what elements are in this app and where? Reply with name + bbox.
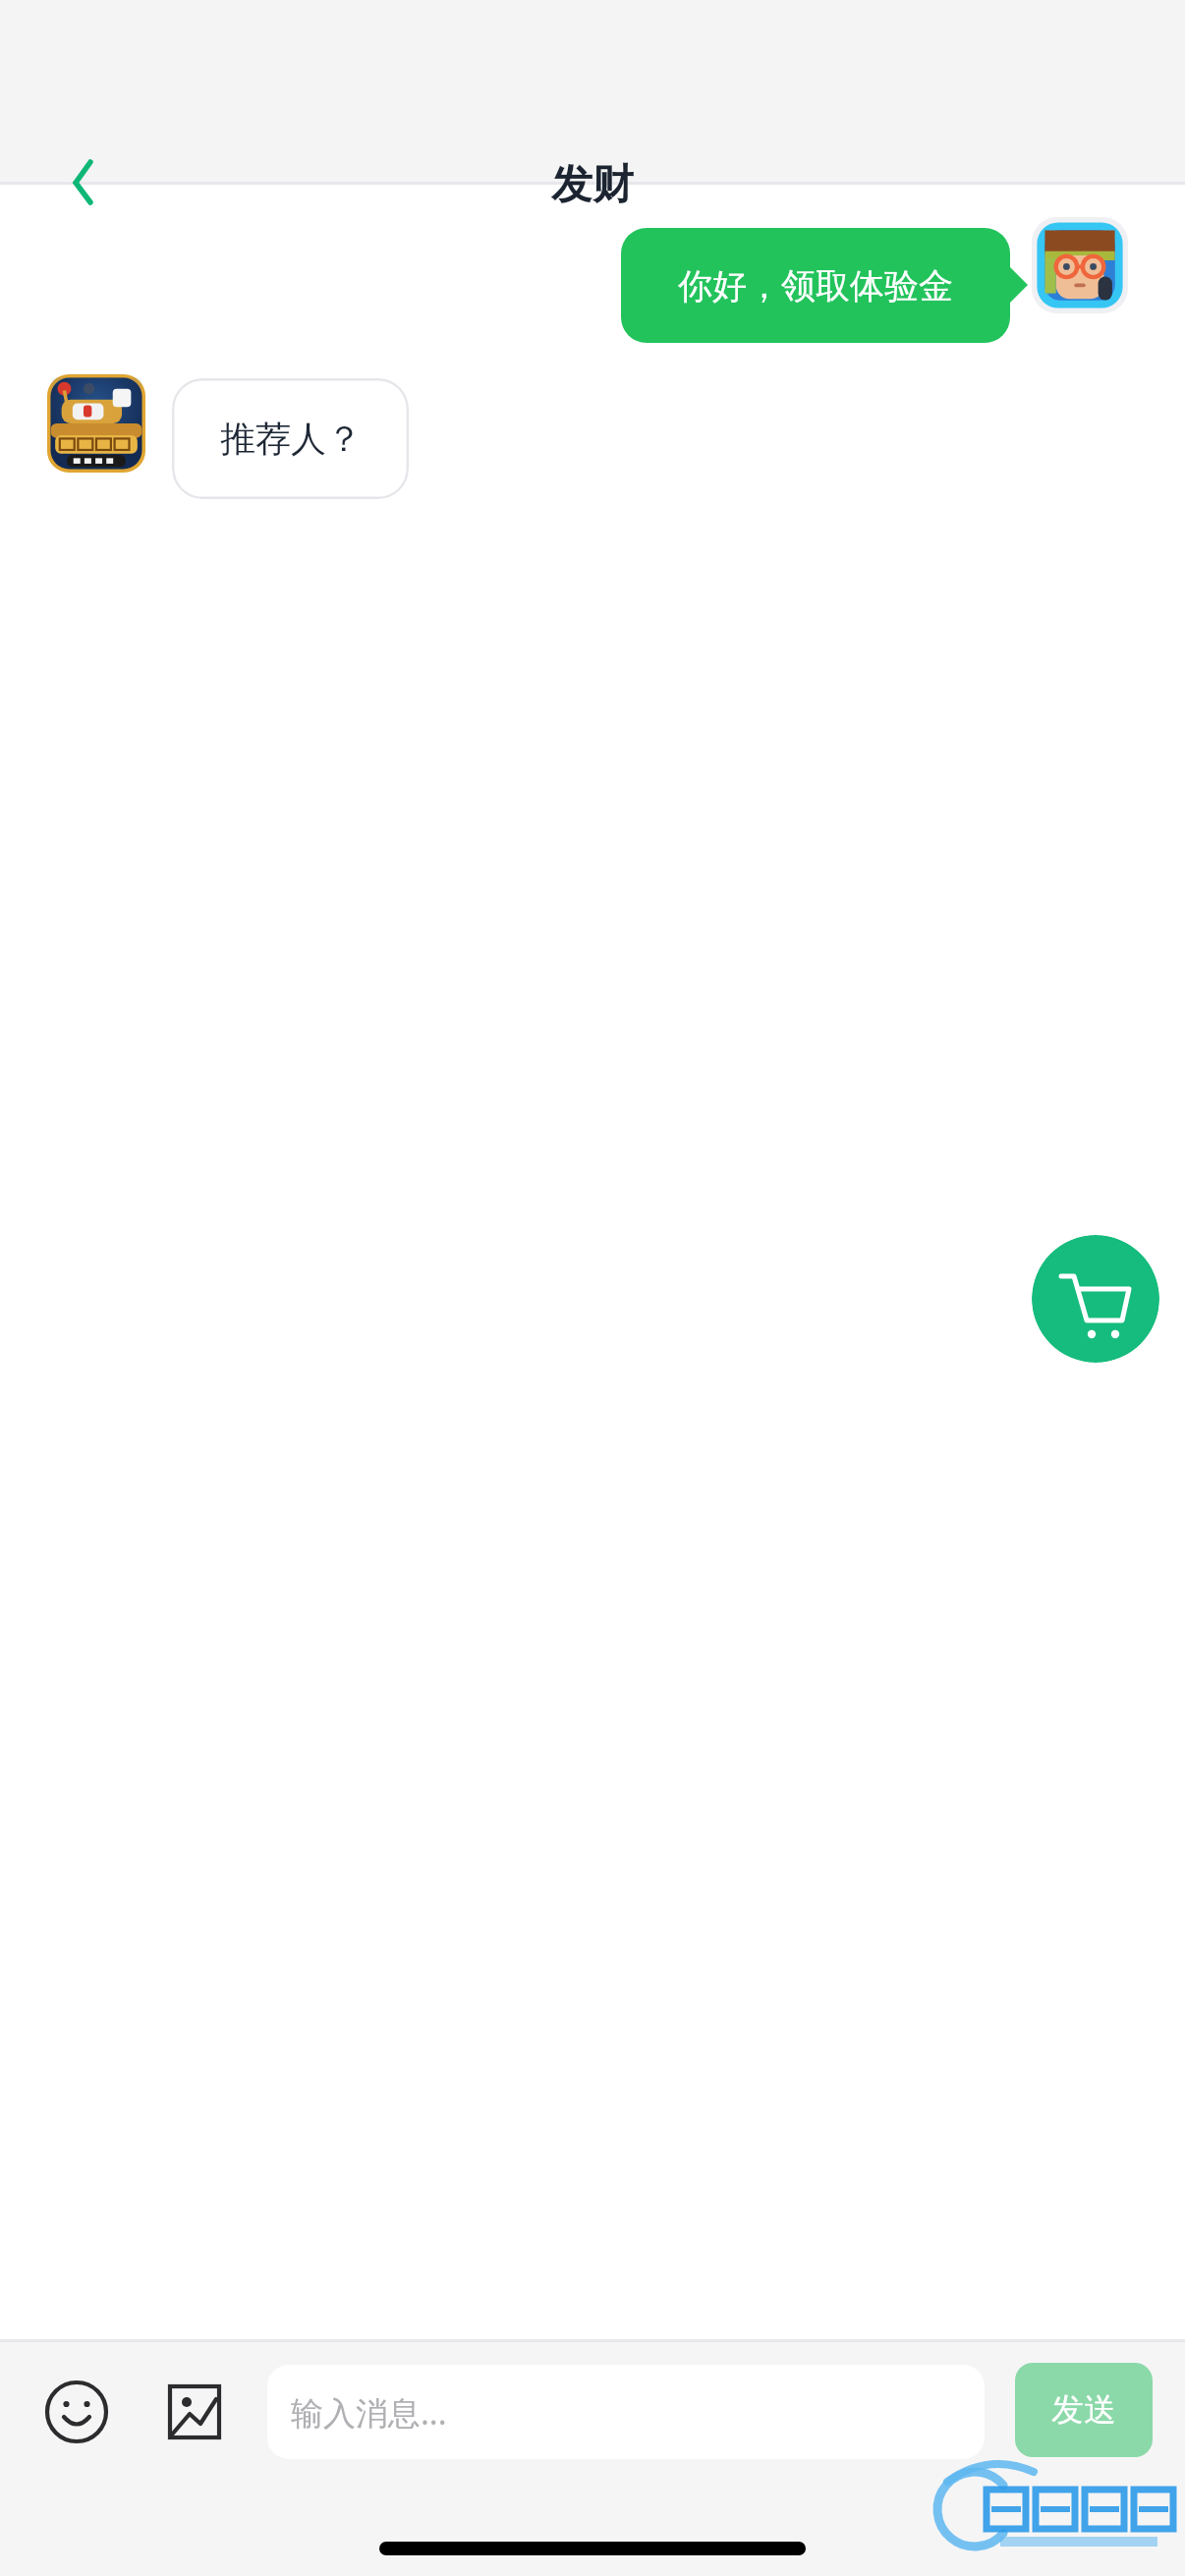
button[interactable]: Contact avatar bbox=[47, 374, 145, 473]
staticText: 发送 bbox=[1051, 2389, 1116, 2431]
staticText: 发财 bbox=[551, 159, 634, 211]
button[interactable]: 推荐人？ bbox=[172, 378, 409, 499]
button[interactable]: My avatar bbox=[1032, 217, 1128, 313]
button[interactable]: Emoji bbox=[35, 2371, 118, 2453]
staticText: 推荐人？ bbox=[220, 417, 362, 461]
button[interactable]: 你好，领取体验金 bbox=[621, 228, 1010, 343]
staticText: 输入消息... bbox=[291, 2390, 447, 2435]
button[interactable]: 发送 bbox=[1015, 2363, 1153, 2457]
button[interactable]: Back bbox=[39, 143, 118, 222]
staticText: 你好，领取体验金 bbox=[678, 264, 953, 308]
button[interactable]: Send image bbox=[152, 2371, 235, 2453]
button[interactable]: Shop bbox=[1032, 1235, 1159, 1363]
button[interactable]: 输入消息... bbox=[267, 2365, 985, 2459]
